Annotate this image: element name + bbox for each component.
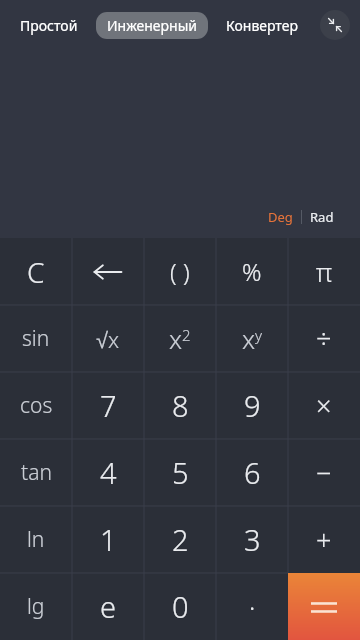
staticText: 7 [100, 386, 117, 425]
staticText: Инженерный [107, 16, 197, 35]
staticText: 2 [172, 520, 189, 559]
staticText: 0 [172, 587, 189, 626]
staticText: 6 [244, 453, 261, 492]
staticText: Deg [268, 208, 293, 226]
button[interactable]: Rad [302, 204, 342, 230]
button[interactable]: Конвертер [220, 12, 304, 39]
button[interactable]: 8 [144, 372, 216, 439]
button[interactable]: Backspace [72, 238, 144, 305]
staticText: 3 [244, 520, 261, 559]
other: Backspace [72, 238, 144, 305]
button[interactable]: Deg [260, 204, 301, 230]
button[interactable]: 5 [144, 439, 216, 506]
button[interactable]: 3 [216, 506, 288, 573]
staticText: 1 [100, 520, 117, 559]
staticText: + [316, 521, 332, 558]
staticText: ÷ [316, 320, 332, 357]
button[interactable]: 2 [144, 506, 216, 573]
button[interactable]: sin [0, 305, 72, 372]
staticText: 4 [100, 453, 117, 492]
button[interactable]: cos [0, 372, 72, 439]
button[interactable]: √x [72, 305, 144, 372]
button[interactable]: 4 [72, 439, 144, 506]
button[interactable]: Equals [288, 573, 360, 640]
button[interactable]: 9 [216, 372, 288, 439]
button[interactable]: · [216, 573, 288, 640]
button[interactable]: x2 [144, 305, 216, 372]
button[interactable]: ÷ [288, 305, 360, 372]
staticText: cos [20, 391, 53, 420]
button[interactable]: ( ) [144, 238, 216, 305]
button[interactable]: Collapse [320, 10, 350, 40]
button[interactable]: % [216, 238, 288, 305]
staticText: % [242, 255, 262, 288]
staticText: C [27, 253, 45, 291]
staticText: − [316, 454, 332, 491]
staticText: × [316, 387, 332, 424]
staticText: ( ) [170, 255, 190, 288]
button[interactable]: xy [216, 305, 288, 372]
staticText: xy [242, 321, 263, 356]
button[interactable]: − [288, 439, 360, 506]
button[interactable]: 7 [72, 372, 144, 439]
staticText: lg [27, 592, 45, 621]
button[interactable]: 0 [144, 573, 216, 640]
staticText: 9 [244, 386, 261, 425]
staticText: 8 [172, 386, 189, 425]
button[interactable]: lg [0, 573, 72, 640]
staticText: e [100, 587, 117, 626]
staticText: sin [22, 324, 50, 353]
button[interactable]: e [72, 573, 144, 640]
button[interactable]: 6 [216, 439, 288, 506]
staticText: Конвертер [226, 16, 298, 35]
button[interactable]: tan [0, 439, 72, 506]
button[interactable]: π [288, 238, 360, 305]
button[interactable]: C [0, 238, 72, 305]
staticText: tan [21, 458, 52, 487]
staticText: x2 [169, 321, 191, 356]
button[interactable]: Простой [14, 12, 84, 39]
staticText: Rad [310, 208, 334, 226]
button[interactable]: + [288, 506, 360, 573]
button[interactable]: ln [0, 506, 72, 573]
staticText: · [249, 589, 256, 624]
staticText: Простой [20, 16, 78, 35]
staticText: π [316, 254, 333, 289]
button[interactable]: Инженерный [96, 12, 208, 39]
staticText: √x [96, 324, 120, 354]
button[interactable]: 1 [72, 506, 144, 573]
staticText: ln [27, 525, 45, 554]
button[interactable]: × [288, 372, 360, 439]
staticText: 5 [172, 453, 189, 492]
